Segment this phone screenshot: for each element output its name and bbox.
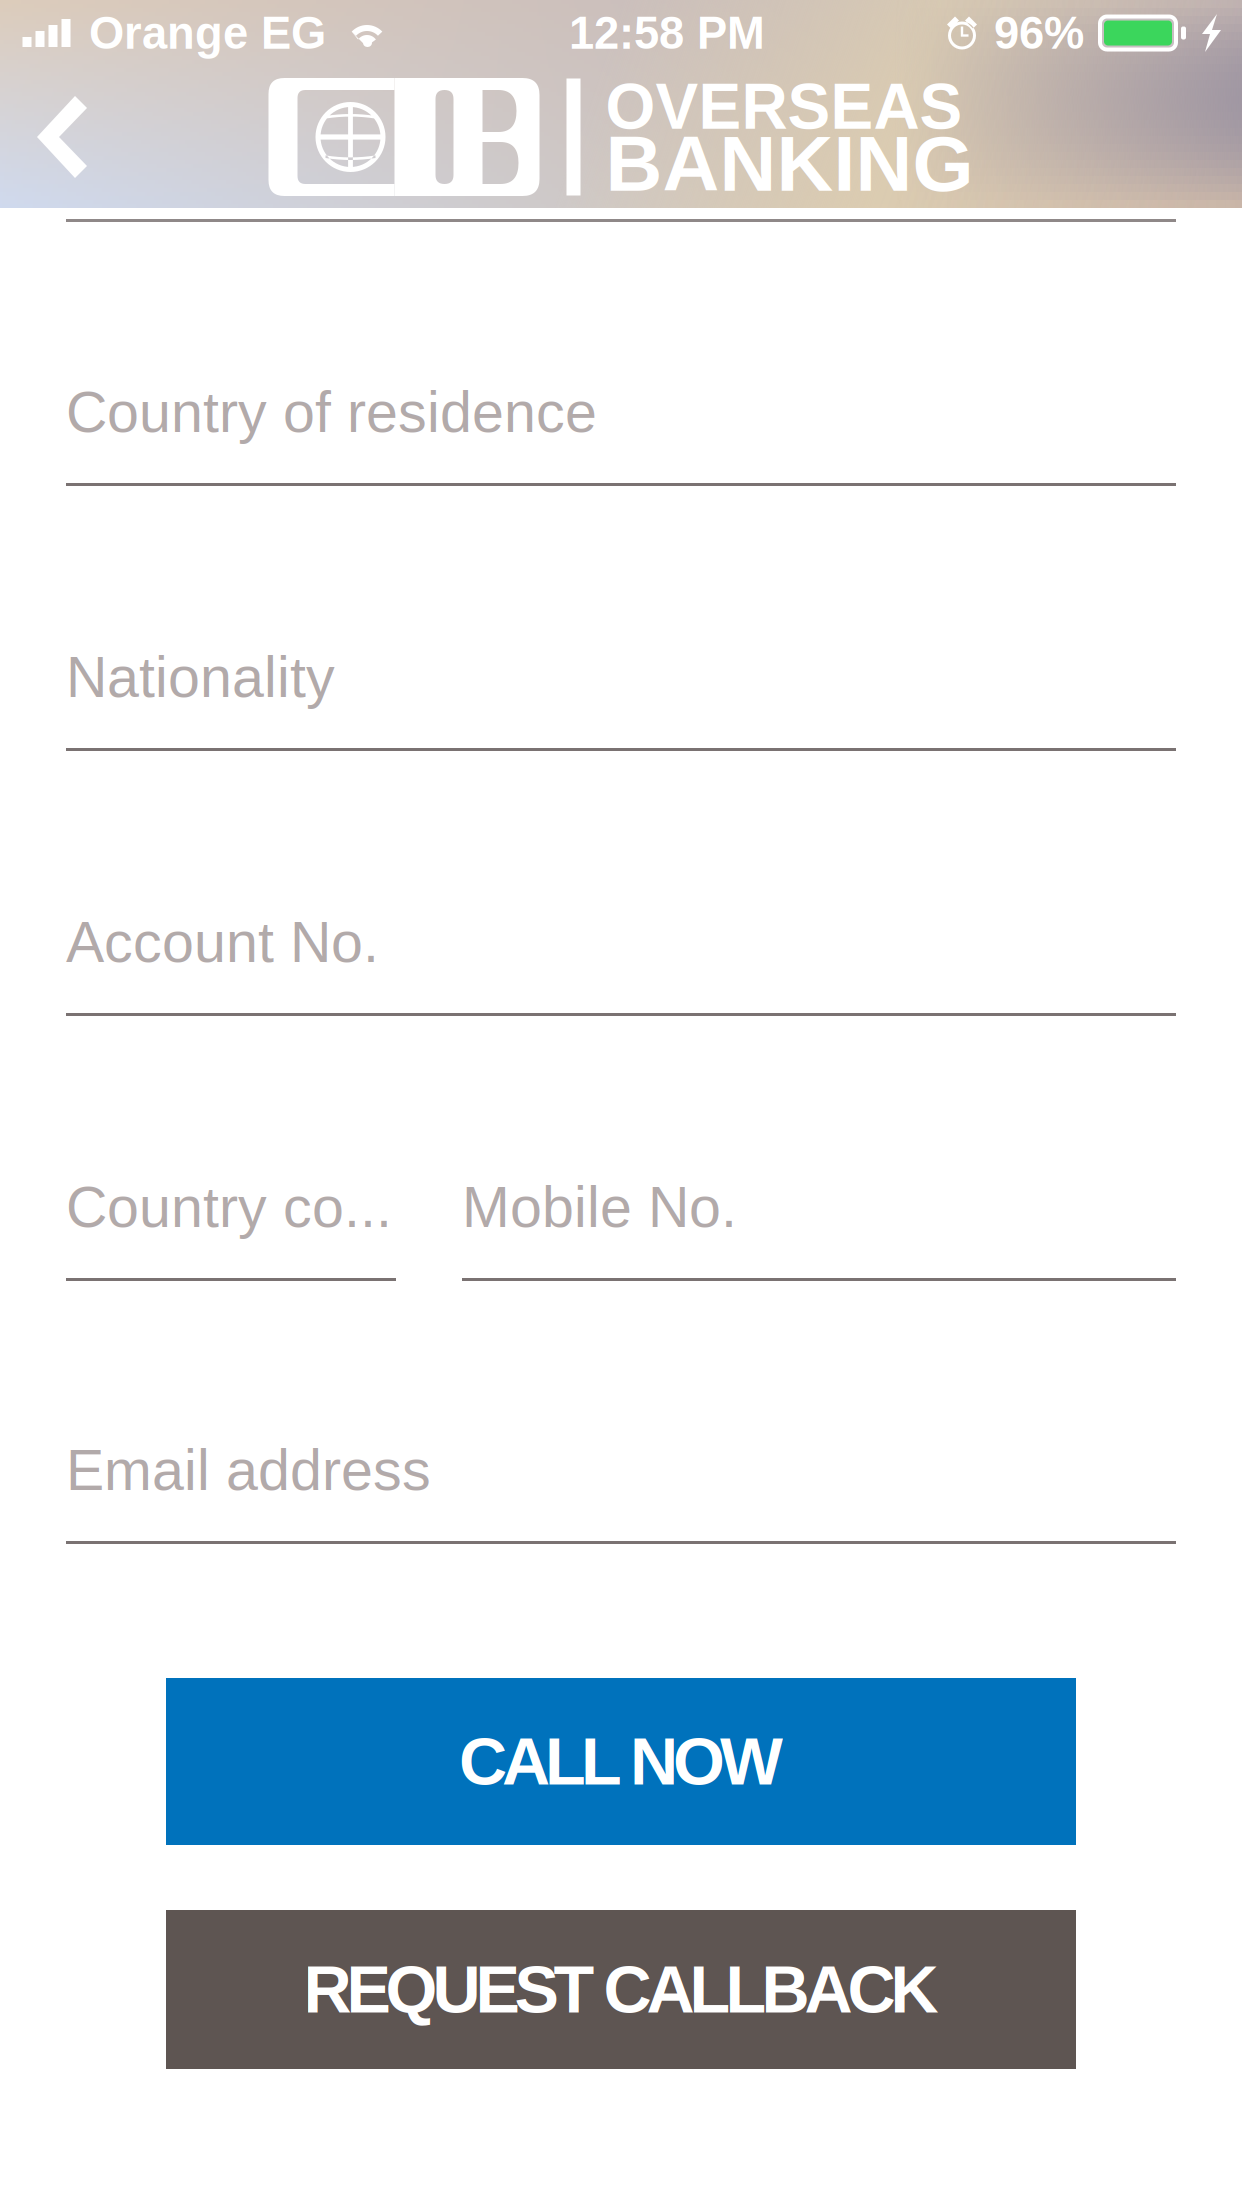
staticText: Orange EG: [89, 8, 326, 58]
button[interactable]: Back: [0, 66, 130, 208]
staticText: Nationality: [66, 645, 335, 709]
staticText: 12:58 PM: [569, 8, 765, 58]
staticText: REQUEST CALLBACK: [303, 1952, 938, 2027]
staticText: Email address: [66, 1438, 431, 1502]
button[interactable]: REQUEST CALLBACK: [166, 1910, 1076, 2069]
staticText: CALL NOW: [459, 1724, 783, 1799]
staticText: Mobile No.: [462, 1175, 737, 1239]
staticText: OVERSEAS: [605, 71, 962, 142]
button[interactable]: CALL NOW: [166, 1678, 1076, 1845]
staticText: BANKING: [605, 120, 973, 207]
staticText: Account No.: [66, 910, 379, 974]
staticText: Country of residence: [66, 380, 597, 444]
staticText: 96%: [994, 8, 1084, 58]
staticText: Country co...: [66, 1175, 392, 1239]
